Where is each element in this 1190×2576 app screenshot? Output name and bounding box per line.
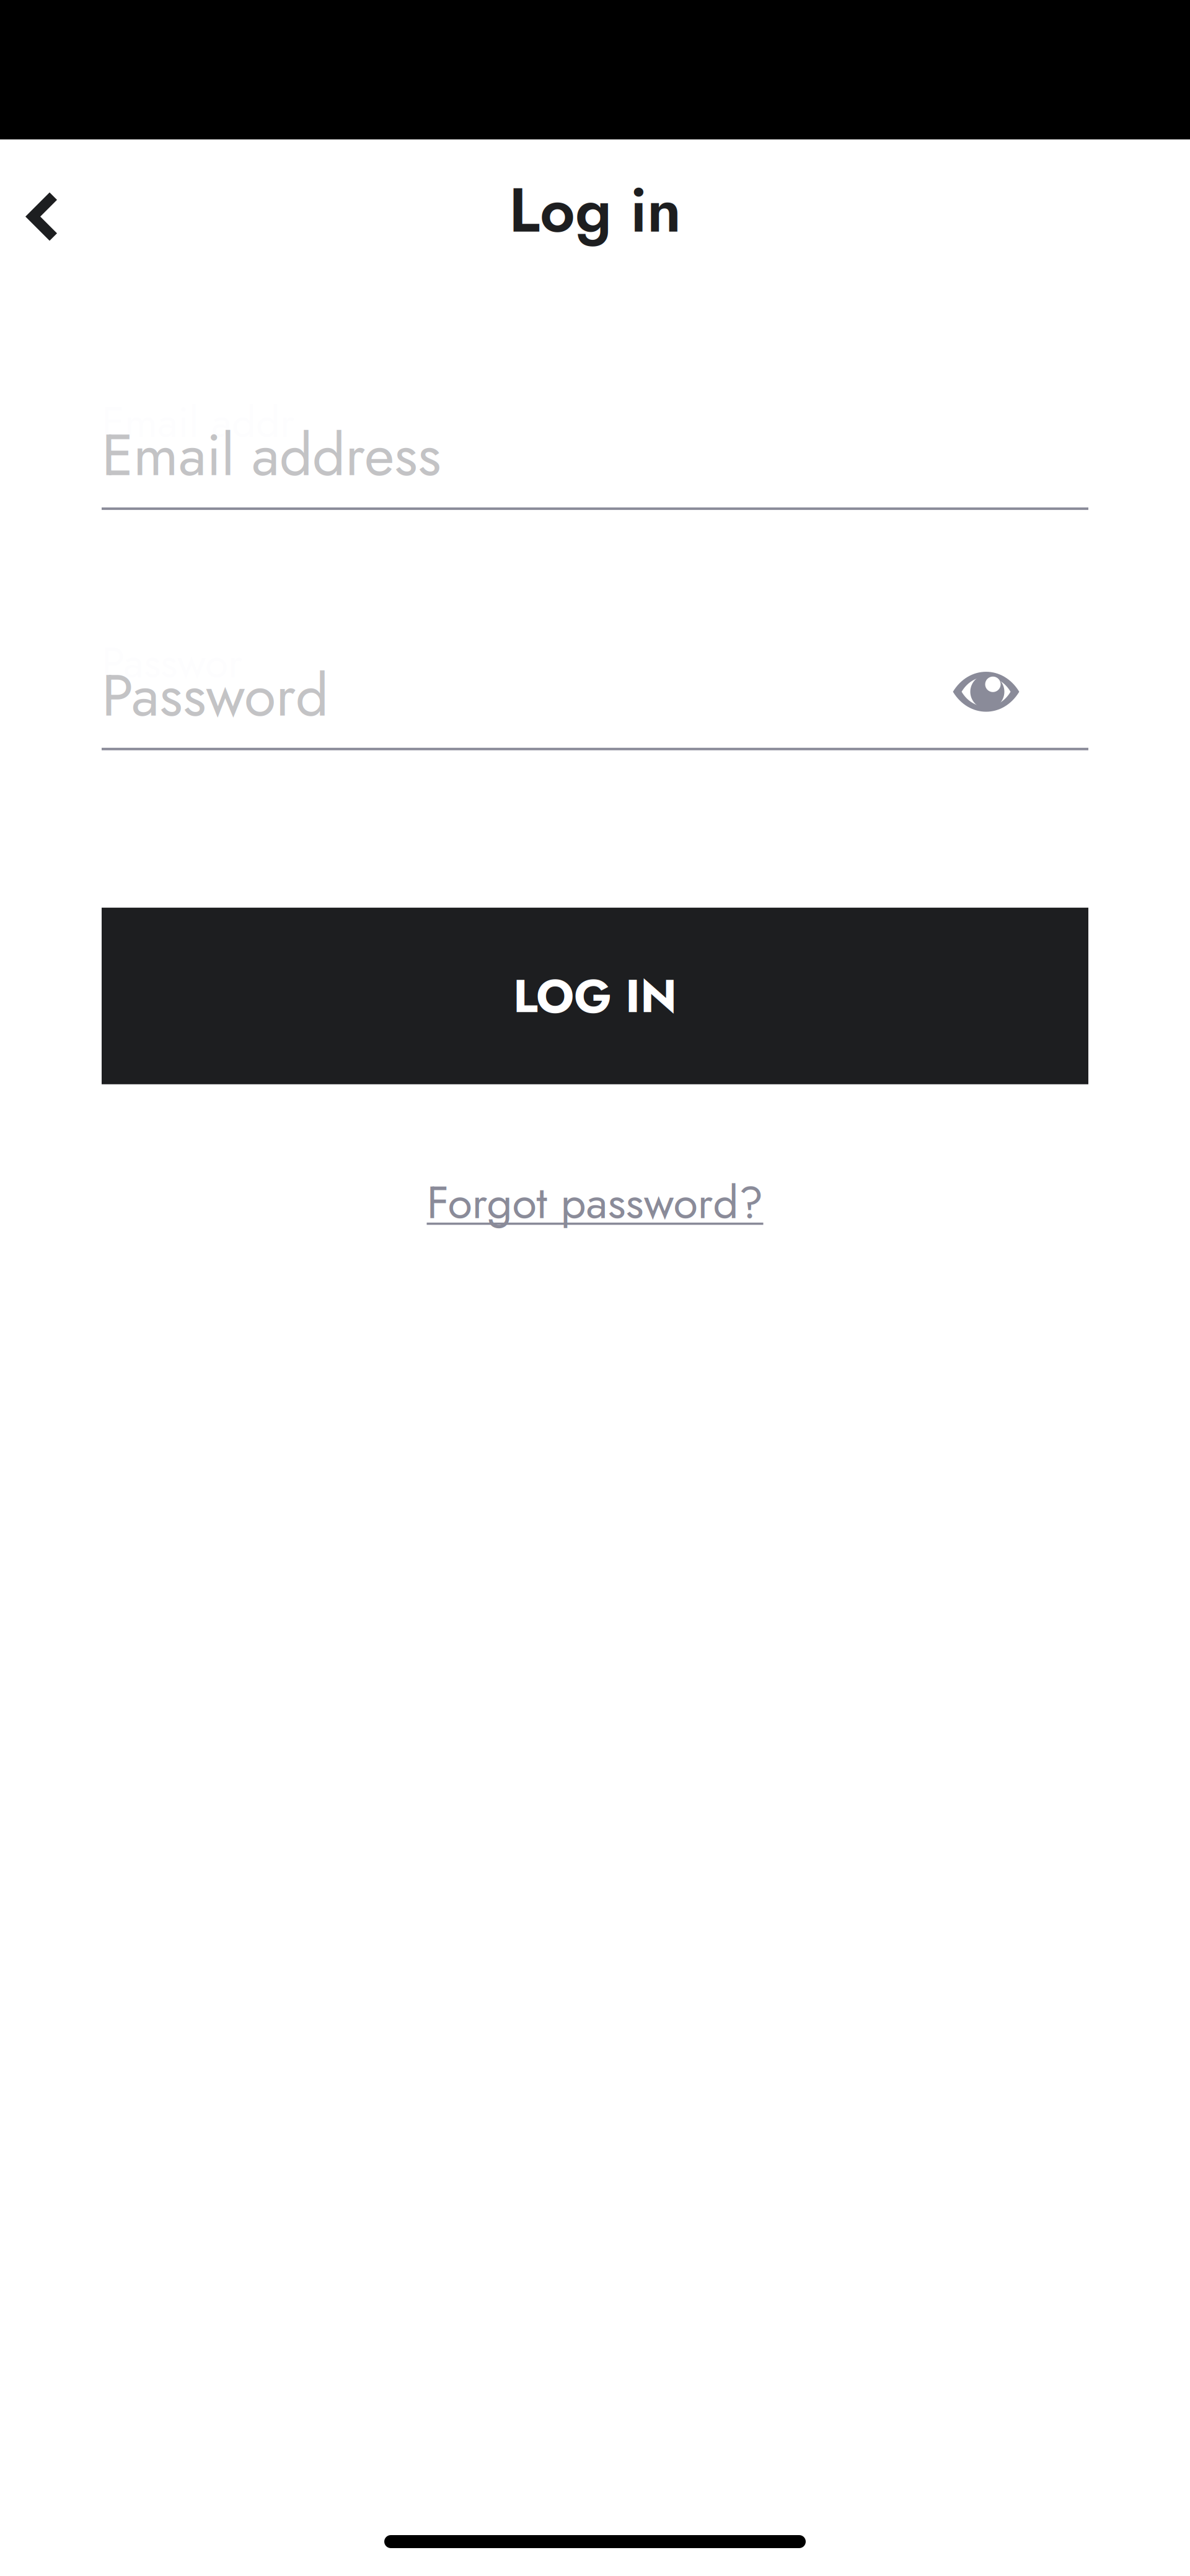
staticText: Passwor — [102, 632, 242, 693]
staticText: Password — [102, 654, 328, 737]
staticText: Forgot password? — [427, 1170, 763, 1235]
staticText: Log in — [509, 166, 681, 255]
button[interactable]: Back — [2, 173, 82, 260]
button[interactable]: Forgot password? — [102, 1162, 1088, 1244]
button[interactable]: Email addr — [102, 413, 1088, 497]
staticText: Email addr — [102, 392, 294, 453]
staticText: Email address — [102, 413, 441, 497]
button[interactable]: Show password — [940, 651, 1033, 733]
staticText: LOG IN — [513, 963, 677, 1029]
button[interactable]: Passwor — [102, 654, 1088, 737]
button[interactable]: LOG IN — [102, 908, 1088, 1084]
